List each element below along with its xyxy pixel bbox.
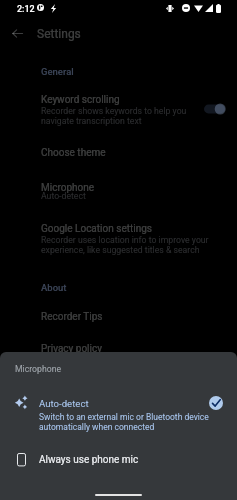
- staticText: 2:12: [17, 3, 35, 15]
- staticText: Microphone: [41, 181, 95, 194]
- button[interactable]: Choose theme: [0, 142, 237, 162]
- button[interactable]: Always use phone mic: [0, 450, 237, 478]
- staticText: Privacy policy: [41, 342, 102, 355]
- button[interactable]: Back: [5, 21, 29, 45]
- staticText: Auto-detect: [41, 191, 86, 201]
- button[interactable]: Google Location settings: [0, 218, 237, 260]
- staticText: Keyword scrolling: [41, 93, 120, 106]
- staticText: Settings: [37, 26, 81, 42]
- button[interactable]: Auto-detect: [0, 391, 237, 435]
- button[interactable]: Microphone: [0, 177, 237, 209]
- staticText: Always use phone mic: [39, 453, 139, 466]
- staticText: Recorder shows keywords to help you navi…: [41, 106, 191, 126]
- staticText: Recorder uses location info to improve y…: [41, 235, 213, 255]
- staticText: Auto-detect: [39, 397, 89, 409]
- button[interactable]: Privacy policy: [0, 338, 237, 358]
- staticText: General: [41, 65, 74, 77]
- staticText: Recorder Tips: [41, 310, 103, 323]
- staticText: Google Location settings: [41, 222, 152, 235]
- staticText: Switch to an external mic or Bluetooth d…: [39, 412, 212, 432]
- staticText: About: [41, 281, 67, 293]
- button[interactable]: Keyword scrolling: [0, 88, 237, 130]
- staticText: Choose theme: [41, 146, 106, 159]
- staticText: Microphone: [15, 363, 62, 374]
- button[interactable]: Recorder Tips: [0, 306, 237, 326]
